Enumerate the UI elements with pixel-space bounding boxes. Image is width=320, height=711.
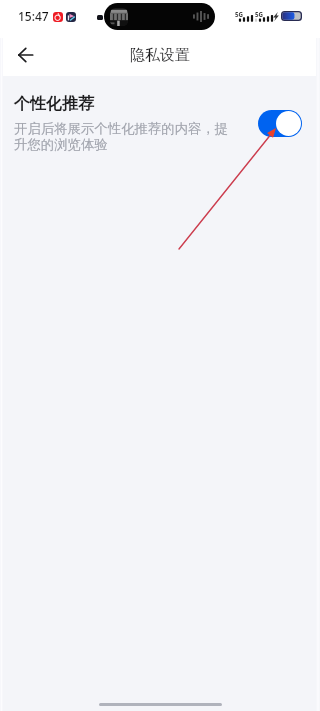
button[interactable]: Toggle personalized recommendations: [258, 110, 302, 137]
staticText: 开启后将展示个性化推荐的内容，提升您的浏览体验: [14, 120, 234, 153]
staticText: 个性化推荐: [14, 94, 94, 114]
staticText: 隐私设置: [130, 46, 190, 65]
staticText: 15:47: [18, 8, 49, 24]
staticText: 5G: [255, 10, 264, 18]
button[interactable]: Back: [8, 38, 42, 72]
staticText: 5G: [235, 10, 244, 18]
